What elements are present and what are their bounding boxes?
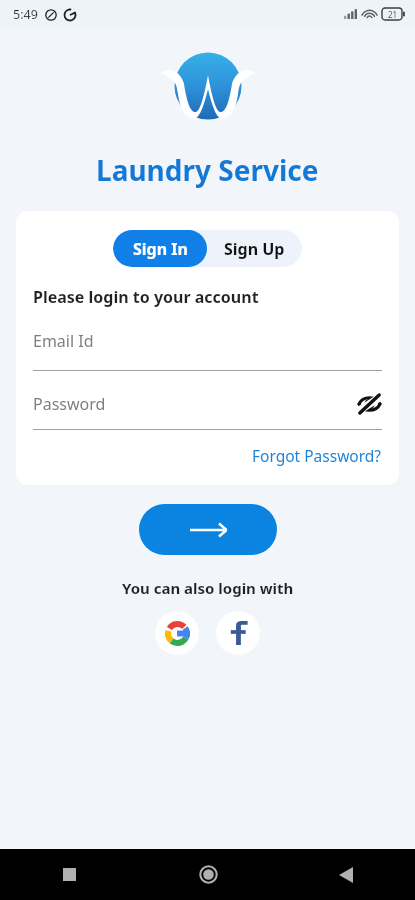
staticText: Forgot Password? [252,445,382,466]
button[interactable]: Password [33,391,382,430]
staticText: Laundry Service [96,151,319,189]
staticText: Sign Up [224,238,285,260]
staticText: 5:49 [13,6,38,23]
button[interactable]: Sign in with Facebook [216,611,260,655]
button[interactable]: Sign in [139,504,277,555]
staticText: Email Id [33,330,94,352]
staticText: 21 [388,9,398,20]
button[interactable]: Show password [356,391,382,417]
button[interactable]: Home [139,849,277,900]
staticText: Password [33,393,106,415]
staticText: Please login to your account [33,286,259,308]
button[interactable]: Forgot Password? [235,441,399,470]
button[interactable]: Sign in with Google [155,611,199,655]
button[interactable]: Recents [0,849,139,900]
staticText: You can also login with [122,578,294,598]
button[interactable]: Back [277,849,415,900]
button[interactable]: Sign Up [207,230,302,267]
staticText: Sign In [133,238,188,260]
button[interactable]: Email Id [33,330,382,371]
button[interactable]: Sign In [113,230,207,267]
